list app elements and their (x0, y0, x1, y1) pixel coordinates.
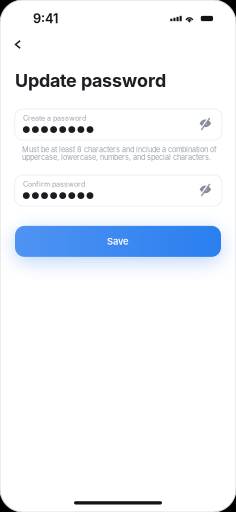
staticText: Must be at least 8 characters and includ… (22, 145, 217, 162)
staticText: 9:41 (33, 11, 58, 26)
button[interactable]: Show Create a password (196, 115, 218, 132)
staticText: Confirm password (23, 180, 85, 188)
staticText: Update password (15, 70, 166, 91)
button[interactable]: Show Confirm password (196, 181, 218, 198)
button[interactable]: Save (15, 226, 221, 257)
staticText: Save (107, 236, 129, 247)
staticText: Create a password (23, 114, 86, 122)
button[interactable]: Back (0, 36, 32, 53)
